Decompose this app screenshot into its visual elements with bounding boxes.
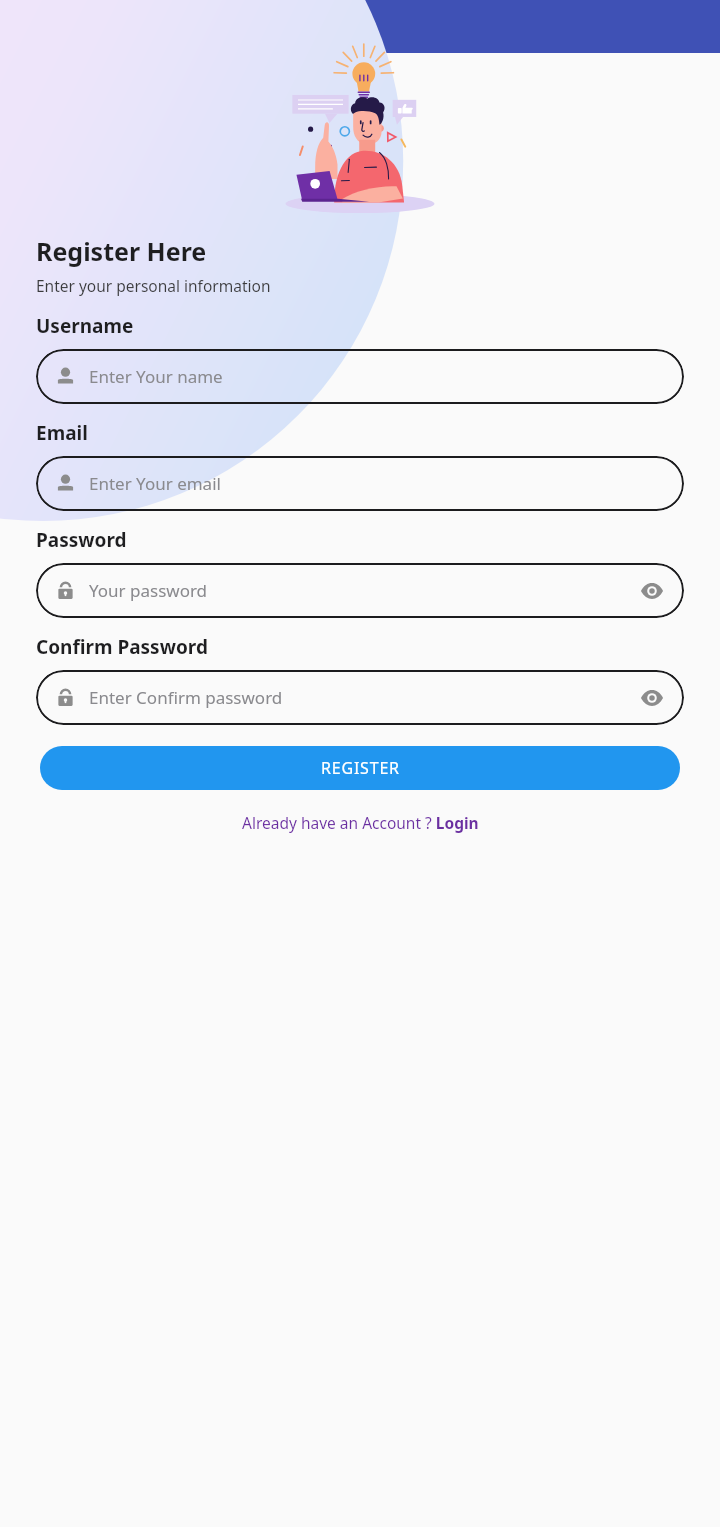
button[interactable]: Enter Confirm password (36, 670, 684, 725)
button[interactable]: Toggle password visibility (638, 684, 666, 712)
button[interactable]: REGISTER (40, 746, 680, 790)
button[interactable]: Enter Your email (36, 456, 684, 511)
button[interactable]: Enter Your name (36, 349, 684, 404)
staticText: Your password (89, 579, 638, 602)
staticText: Password (36, 527, 127, 553)
staticText: Already have an Account ? Login (242, 812, 479, 833)
staticText: Confirm Password (36, 634, 208, 660)
button[interactable]: Your password (36, 563, 684, 618)
button[interactable]: Toggle password visibility (638, 577, 666, 605)
staticText: Enter Your email (89, 472, 666, 495)
staticText: Register Here (36, 234, 207, 268)
staticText: Enter Your name (89, 365, 666, 388)
staticText: Email (36, 420, 88, 446)
staticText: REGISTER (321, 757, 400, 779)
staticText: Username (36, 313, 134, 339)
staticText: Enter your personal information (36, 275, 271, 296)
button[interactable]: Already have an Account ? Login (0, 812, 720, 833)
staticText: Enter Confirm password (89, 686, 638, 709)
